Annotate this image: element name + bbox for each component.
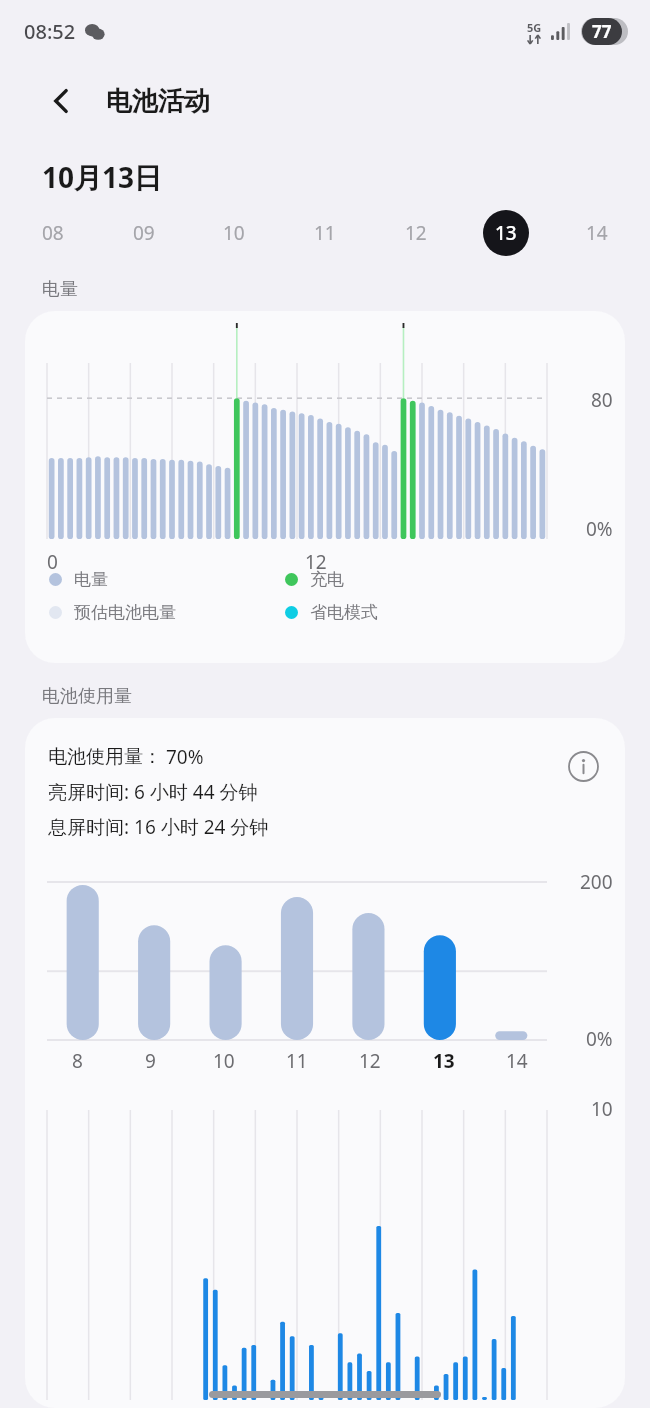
- staticText: 13: [495, 220, 517, 246]
- button[interactable]: 电池使用量：: [25, 718, 625, 1408]
- staticText: 电池活动: [106, 85, 210, 118]
- staticText: 08: [42, 220, 64, 246]
- button[interactable]: 14: [574, 210, 620, 256]
- staticText: 80: [591, 387, 613, 413]
- button[interactable]: 08: [30, 210, 76, 256]
- staticText: 14: [506, 1048, 528, 1074]
- staticText: 12: [405, 220, 427, 246]
- staticText: 电量: [42, 278, 78, 301]
- staticText: 77: [592, 20, 612, 43]
- button[interactable]: 80: [25, 311, 625, 663]
- staticText: 电池使用量：: [48, 745, 162, 769]
- button[interactable]: 13: [483, 210, 529, 256]
- staticText: 0: [47, 549, 58, 575]
- staticText: 11: [314, 220, 336, 246]
- staticText: 亮屏时间: 6 小时 44 分钟: [48, 779, 258, 805]
- staticText: 预估电池电量: [74, 602, 176, 623]
- staticText: 0%: [586, 516, 613, 542]
- staticText: 息屏时间: 16 小时 24 分钟: [48, 814, 269, 840]
- button[interactable]: 09: [121, 210, 167, 256]
- staticText: 200: [580, 869, 613, 895]
- staticText: 10: [223, 220, 245, 246]
- staticText: 11: [286, 1048, 308, 1074]
- staticText: 10月13日: [42, 158, 163, 196]
- staticText: 电池使用量: [42, 685, 132, 708]
- staticText: 9: [145, 1048, 156, 1074]
- staticText: 8: [72, 1048, 83, 1074]
- staticText: 10: [591, 1096, 613, 1122]
- staticText: 省电模式: [310, 602, 378, 623]
- button[interactable]: 11: [302, 210, 348, 256]
- staticText: 13: [433, 1048, 455, 1074]
- button[interactable]: 10: [211, 210, 257, 256]
- staticText: 10: [213, 1048, 235, 1074]
- staticText: 0%: [586, 1026, 613, 1052]
- staticText: 5G: [527, 20, 542, 35]
- staticText: 12: [305, 549, 327, 575]
- staticText: 14: [586, 220, 608, 246]
- staticText: 电量: [74, 569, 108, 590]
- staticText: 充电: [310, 569, 344, 590]
- button[interactable]: Info: [563, 746, 603, 786]
- staticText: 08:52: [24, 18, 76, 45]
- staticText: 12: [359, 1048, 381, 1074]
- staticText: 09: [133, 220, 155, 246]
- staticText: 70%: [166, 744, 204, 770]
- button[interactable]: Back: [40, 79, 84, 123]
- button[interactable]: 12: [393, 210, 439, 256]
